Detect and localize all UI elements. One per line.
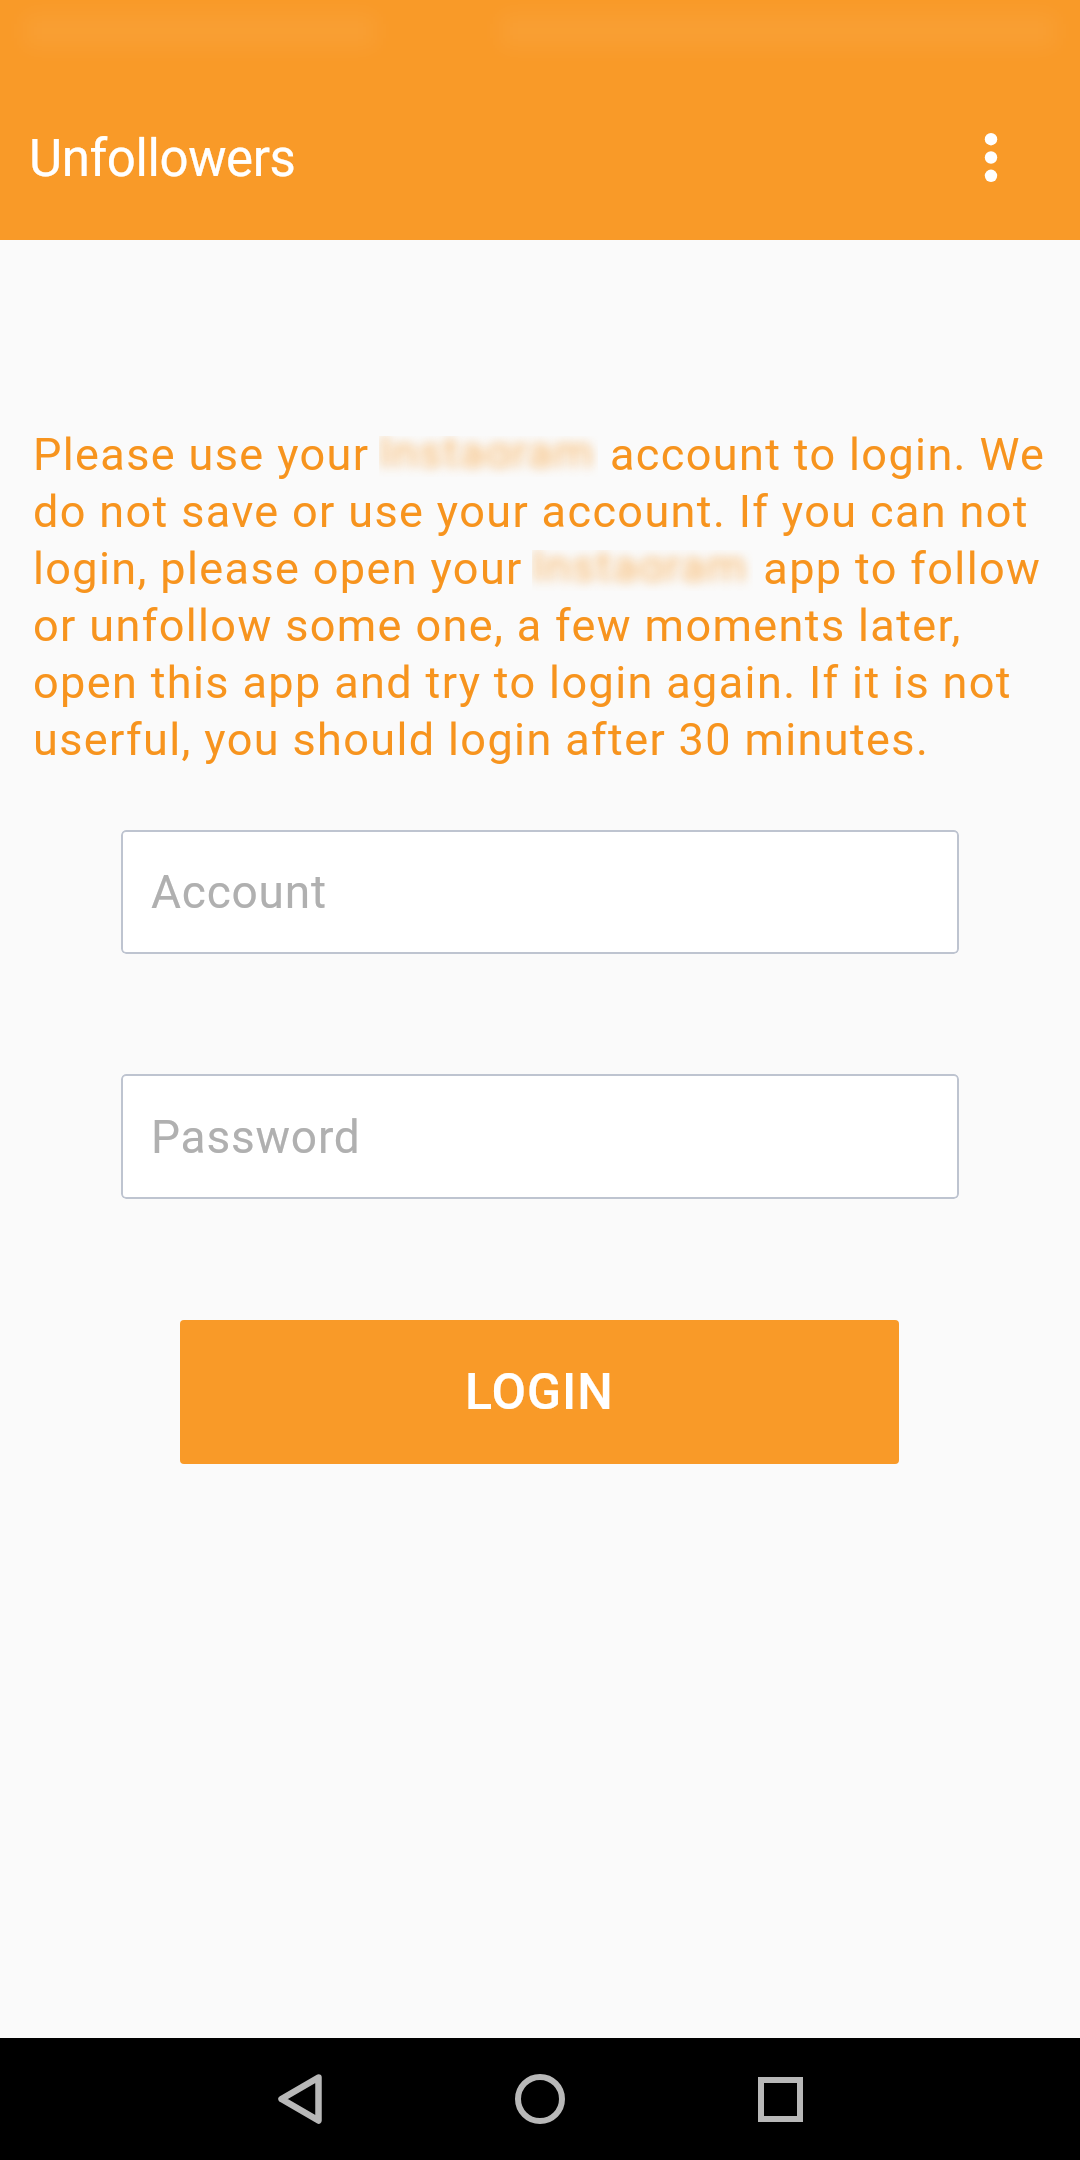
button[interactable]: Password (121, 1074, 959, 1199)
staticText: Account (151, 865, 327, 919)
staticText: Unfollowers (29, 129, 296, 189)
staticText: Instagram (379, 436, 595, 467)
staticText: Password (151, 1110, 361, 1164)
button[interactable]: Account (121, 830, 959, 954)
staticText: Instagram (532, 550, 748, 581)
button[interactable]: LOGIN (180, 1320, 899, 1464)
button[interactable]: More options (933, 103, 1049, 219)
button[interactable]: Home (480, 2038, 600, 2160)
button[interactable]: Back (240, 2038, 360, 2160)
button[interactable]: Recent apps (720, 2038, 840, 2160)
staticText: Please use your Instagram account to log… (33, 428, 1047, 766)
staticText: LOGIN (465, 1363, 614, 1422)
